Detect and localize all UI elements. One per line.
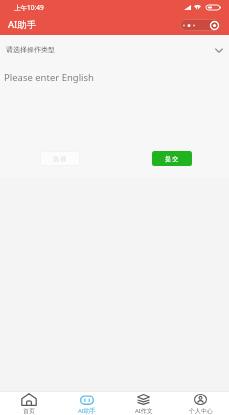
staticText: 首页 — [23, 407, 35, 415]
staticText: AI作文 — [135, 407, 153, 415]
staticText: 请选择操作类型 — [6, 45, 55, 54]
staticText: Please enter English — [4, 71, 94, 84]
button[interactable]: 个人中心 — [172, 391, 229, 415]
button[interactable]: 首页 — [0, 391, 58, 415]
staticText: 选 择 — [53, 155, 67, 163]
button[interactable]: 选 择 — [40, 151, 80, 166]
button[interactable]: AI作文 — [115, 391, 172, 415]
staticText: AI助手 — [78, 407, 96, 415]
staticText: 上午10:49 — [14, 3, 44, 12]
staticText: 提 交 — [165, 155, 179, 163]
button[interactable]: 请选择操作类型 — [0, 35, 229, 64]
button[interactable]: More options — [180, 19, 221, 31]
button[interactable]: AI助手 — [58, 391, 115, 415]
staticText: 个人中心 — [189, 407, 213, 415]
button[interactable]: 提 交 — [152, 151, 192, 166]
staticText: AI助手 — [8, 18, 37, 31]
